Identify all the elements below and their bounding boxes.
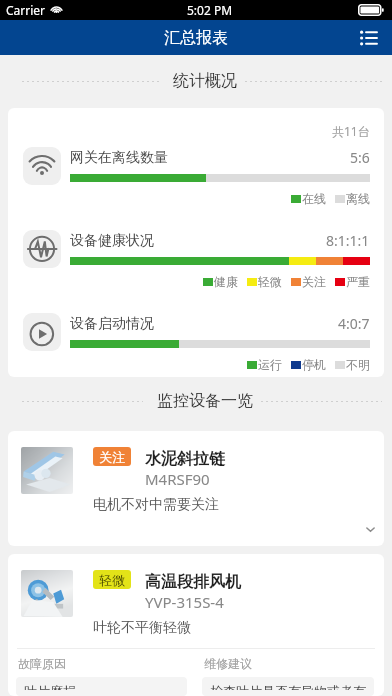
staticText: 轻微 [258,274,282,289]
button[interactable]: 轻微 [8,554,384,696]
staticText: 5:02 PM [187,2,233,18]
staticText: 轻微 [99,572,125,588]
staticText: 关注 [302,274,326,289]
staticText: 网关在离线数量 [70,149,168,167]
staticText: 设备启动情况 [70,315,154,333]
staticText: YVP-315S-4 [145,592,224,612]
staticText: 共11台 [332,123,370,139]
staticText: 在线 [302,191,326,206]
staticText: 检查叶片是否有异物或者有叶片有变形 [210,683,366,690]
staticText: 4:0:7 [338,314,370,333]
staticText: 维修建议 [204,656,252,671]
staticText: 运行 [258,357,282,372]
staticText: 严重 [346,274,370,289]
staticText: 设备健康状况 [70,232,154,250]
staticText: 故障原因 [18,656,66,671]
staticText: 不明 [346,357,370,372]
staticText: 叶片磨损 叶片安装偏差 [24,683,102,690]
staticText: 离线 [346,191,370,206]
staticText: 监控设备一览 [157,391,253,411]
staticText: 关注 [99,449,125,465]
staticText: 电机不对中需要关注 [93,496,219,514]
button[interactable]: 列表 [354,24,382,52]
staticText: 汇总报表 [164,28,228,48]
staticText: 停机 [302,357,326,372]
staticText: 高温段排风机 [145,572,241,592]
staticText: 统计概况 [173,71,237,91]
staticText: Carrier [6,2,46,18]
staticText: 5:6 [350,148,370,167]
staticText: 健康 [214,274,238,289]
staticText: 水泥斜拉链 [145,449,225,469]
staticText: M4RSF90 [145,469,210,489]
button[interactable]: 关注 [8,431,384,546]
staticText: 叶轮不平衡轻微 [93,619,191,637]
staticText: 8:1:1:1 [326,231,370,250]
